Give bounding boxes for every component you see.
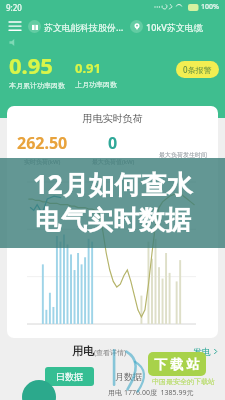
button[interactable]: 月数据	[104, 367, 153, 386]
staticText: 下 载 站	[154, 355, 200, 373]
staticText: 中国最安全的下载站	[152, 377, 215, 386]
staticText: 100%	[201, 2, 219, 12]
button[interactable]: 苏文电能科技股份…	[28, 20, 124, 33]
staticText: 用电实时负荷	[7, 112, 218, 125]
staticText: 0.91	[75, 59, 101, 77]
button[interactable]: 用电	[72, 344, 127, 358]
staticText: 0	[108, 132, 118, 154]
button[interactable]: 0条报警	[176, 61, 219, 78]
staticText: 用电	[72, 344, 94, 358]
staticText: 日数据	[56, 371, 83, 382]
staticText: 本月累计功率因数	[9, 81, 65, 90]
staticText: 发电	[193, 346, 211, 357]
button[interactable]: 日数据	[45, 367, 94, 386]
staticText: 1776.00度 1385.99元	[124, 388, 194, 398]
staticText: 用电	[108, 388, 122, 397]
staticText: 最大负荷值(kW)	[92, 158, 135, 166]
staticText: 12月如何查水	[33, 166, 193, 202]
staticText: 实时负荷(kW)	[24, 158, 61, 166]
staticText: 苏文电能科技股份…	[44, 21, 124, 33]
staticText: 月数据	[115, 371, 142, 382]
staticText: 0条报警	[183, 64, 212, 75]
staticText: 9:20	[6, 2, 22, 13]
button[interactable]: 10kV苏文电缆	[130, 20, 203, 33]
staticText: (查看详情)	[94, 348, 127, 358]
staticText: 262.50	[17, 132, 68, 154]
staticText: 最大负荷发生时间	[159, 151, 207, 159]
staticText: 10kV苏文电缆	[146, 21, 203, 33]
staticText: 上月功率因数	[75, 80, 117, 89]
staticText: 0.95	[9, 50, 53, 80]
button[interactable]: 发电	[193, 346, 218, 357]
button[interactable]: Menu	[7, 18, 23, 34]
staticText: 电气实时数据	[35, 204, 191, 237]
